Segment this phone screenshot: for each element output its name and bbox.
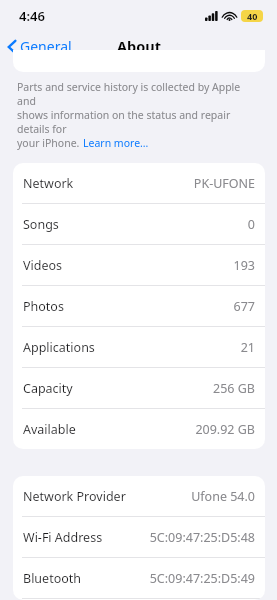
staticText: your iPhone.: [17, 136, 83, 150]
button[interactable]: Bluetooth: [13, 558, 265, 598]
staticText: About: [117, 36, 161, 56]
button[interactable]: Available: [13, 409, 265, 449]
staticText: Applications: [23, 339, 95, 356]
staticText: Capacity: [23, 380, 73, 397]
button[interactable]: Wi-Fi Address: [13, 517, 265, 557]
staticText: 5C:09:47:25:D5:48: [149, 529, 255, 546]
staticText: Ufone 54.0: [191, 488, 255, 505]
staticText: 193: [233, 257, 255, 274]
staticText: Learn more…: [83, 136, 149, 150]
button[interactable]: Capacity: [13, 368, 265, 408]
staticText: Songs: [23, 216, 59, 233]
button[interactable]: Network: [13, 163, 265, 203]
staticText: shows information on the status and repa…: [17, 108, 261, 136]
staticText: Available: [23, 421, 76, 438]
button[interactable]: Photos: [13, 286, 265, 326]
staticText: 4:46: [19, 7, 45, 25]
staticText: 677: [233, 298, 255, 315]
button[interactable]: Songs: [13, 204, 265, 244]
staticText: Wi-Fi Address: [23, 529, 103, 546]
staticText: PK-UFONE: [193, 175, 255, 192]
button[interactable]: Videos: [13, 245, 265, 285]
staticText: 256 GB: [213, 380, 255, 397]
staticText: Videos: [23, 257, 63, 274]
staticText: Network Provider: [23, 488, 126, 505]
staticText: General: [20, 37, 72, 56]
button[interactable]: General: [0, 33, 80, 60]
staticText: 5C:09:47:25:D5:49: [149, 570, 255, 587]
staticText: 209.92 GB: [195, 421, 255, 438]
staticText: Network: [23, 175, 74, 192]
button[interactable]: Applications: [13, 327, 265, 367]
button[interactable]: Learn more…: [83, 136, 149, 150]
button[interactable]: Network Provider: [13, 476, 265, 516]
button[interactable]: IMEI: [13, 599, 265, 600]
staticText: 0: [247, 216, 255, 233]
staticText: Photos: [23, 298, 64, 315]
staticText: 21: [240, 339, 255, 356]
staticText: Parts and service history is collected b…: [17, 80, 261, 108]
staticText: 40: [247, 10, 258, 22]
staticText: Bluetooth: [23, 570, 82, 587]
